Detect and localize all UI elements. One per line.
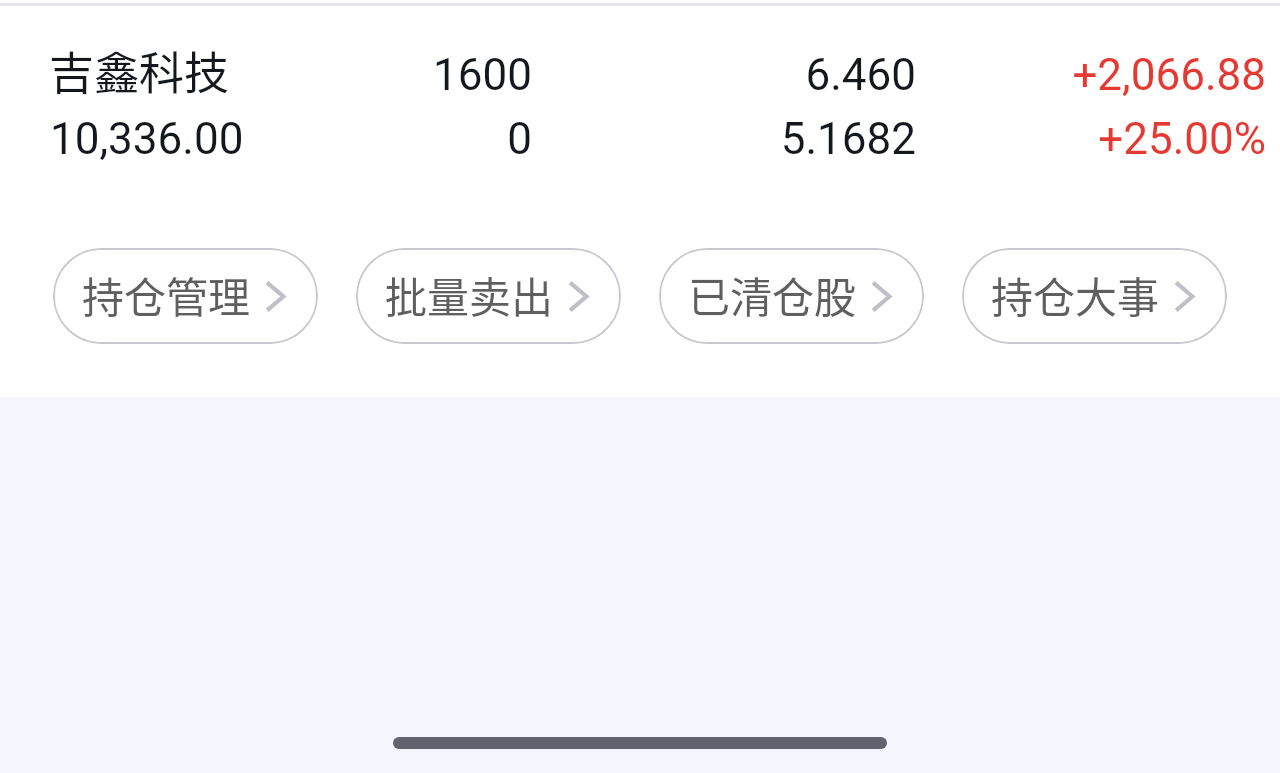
button[interactable]: 批量卖出 [356, 248, 621, 344]
staticText: 持仓大事 [991, 264, 1160, 325]
staticText: 0 [148, 113, 532, 165]
staticText: +2,066.88 [916, 49, 1266, 101]
staticText: 持仓管理 [82, 264, 251, 325]
other: 查看已清仓股 [871, 280, 892, 313]
other: 查看持仓大事 [1174, 280, 1195, 313]
button[interactable]: 持仓管理 [53, 248, 318, 344]
button[interactable]: 持仓大事 [962, 248, 1227, 344]
staticText: 1600 [148, 49, 532, 101]
other: 查看批量卖出 [568, 280, 589, 313]
staticText: 6.460 [532, 49, 916, 101]
staticText: +25.00% [916, 113, 1266, 165]
button[interactable]: 吉鑫科技 [0, 24, 1280, 176]
staticText: 批量卖出 [385, 264, 554, 325]
other: 查看持仓管理 [265, 280, 286, 313]
staticText: 吉鑫科技 [49, 38, 519, 103]
staticText: 10,336.00 [50, 113, 520, 165]
staticText: 已清仓股 [688, 264, 857, 325]
staticText: 5.1682 [532, 113, 916, 165]
button[interactable]: 已清仓股 [659, 248, 924, 344]
